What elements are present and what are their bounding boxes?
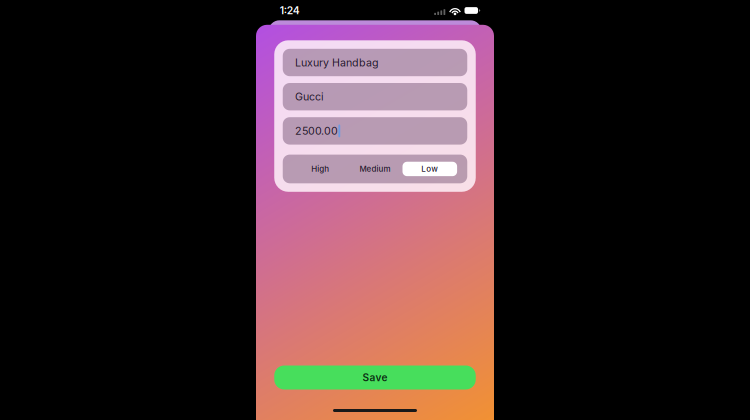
staticText: 1:24 [280, 4, 300, 17]
staticText: Luxury Handbag [295, 56, 379, 69]
button[interactable]: 2500.00 [283, 117, 467, 145]
staticText: Gucci [295, 90, 324, 103]
button[interactable]: Save [274, 365, 476, 389]
staticText: 2500.00 [295, 124, 338, 137]
staticText: Medium [359, 164, 390, 174]
button[interactable]: Luxury Handbag [283, 49, 467, 76]
staticText: Low [421, 164, 438, 174]
button[interactable]: High [293, 155, 348, 183]
button[interactable]: Medium [348, 155, 402, 183]
button[interactable]: Low [402, 155, 457, 183]
button[interactable]: Gucci [283, 83, 467, 110]
staticText: High [311, 164, 329, 174]
staticText: Save [362, 371, 387, 384]
